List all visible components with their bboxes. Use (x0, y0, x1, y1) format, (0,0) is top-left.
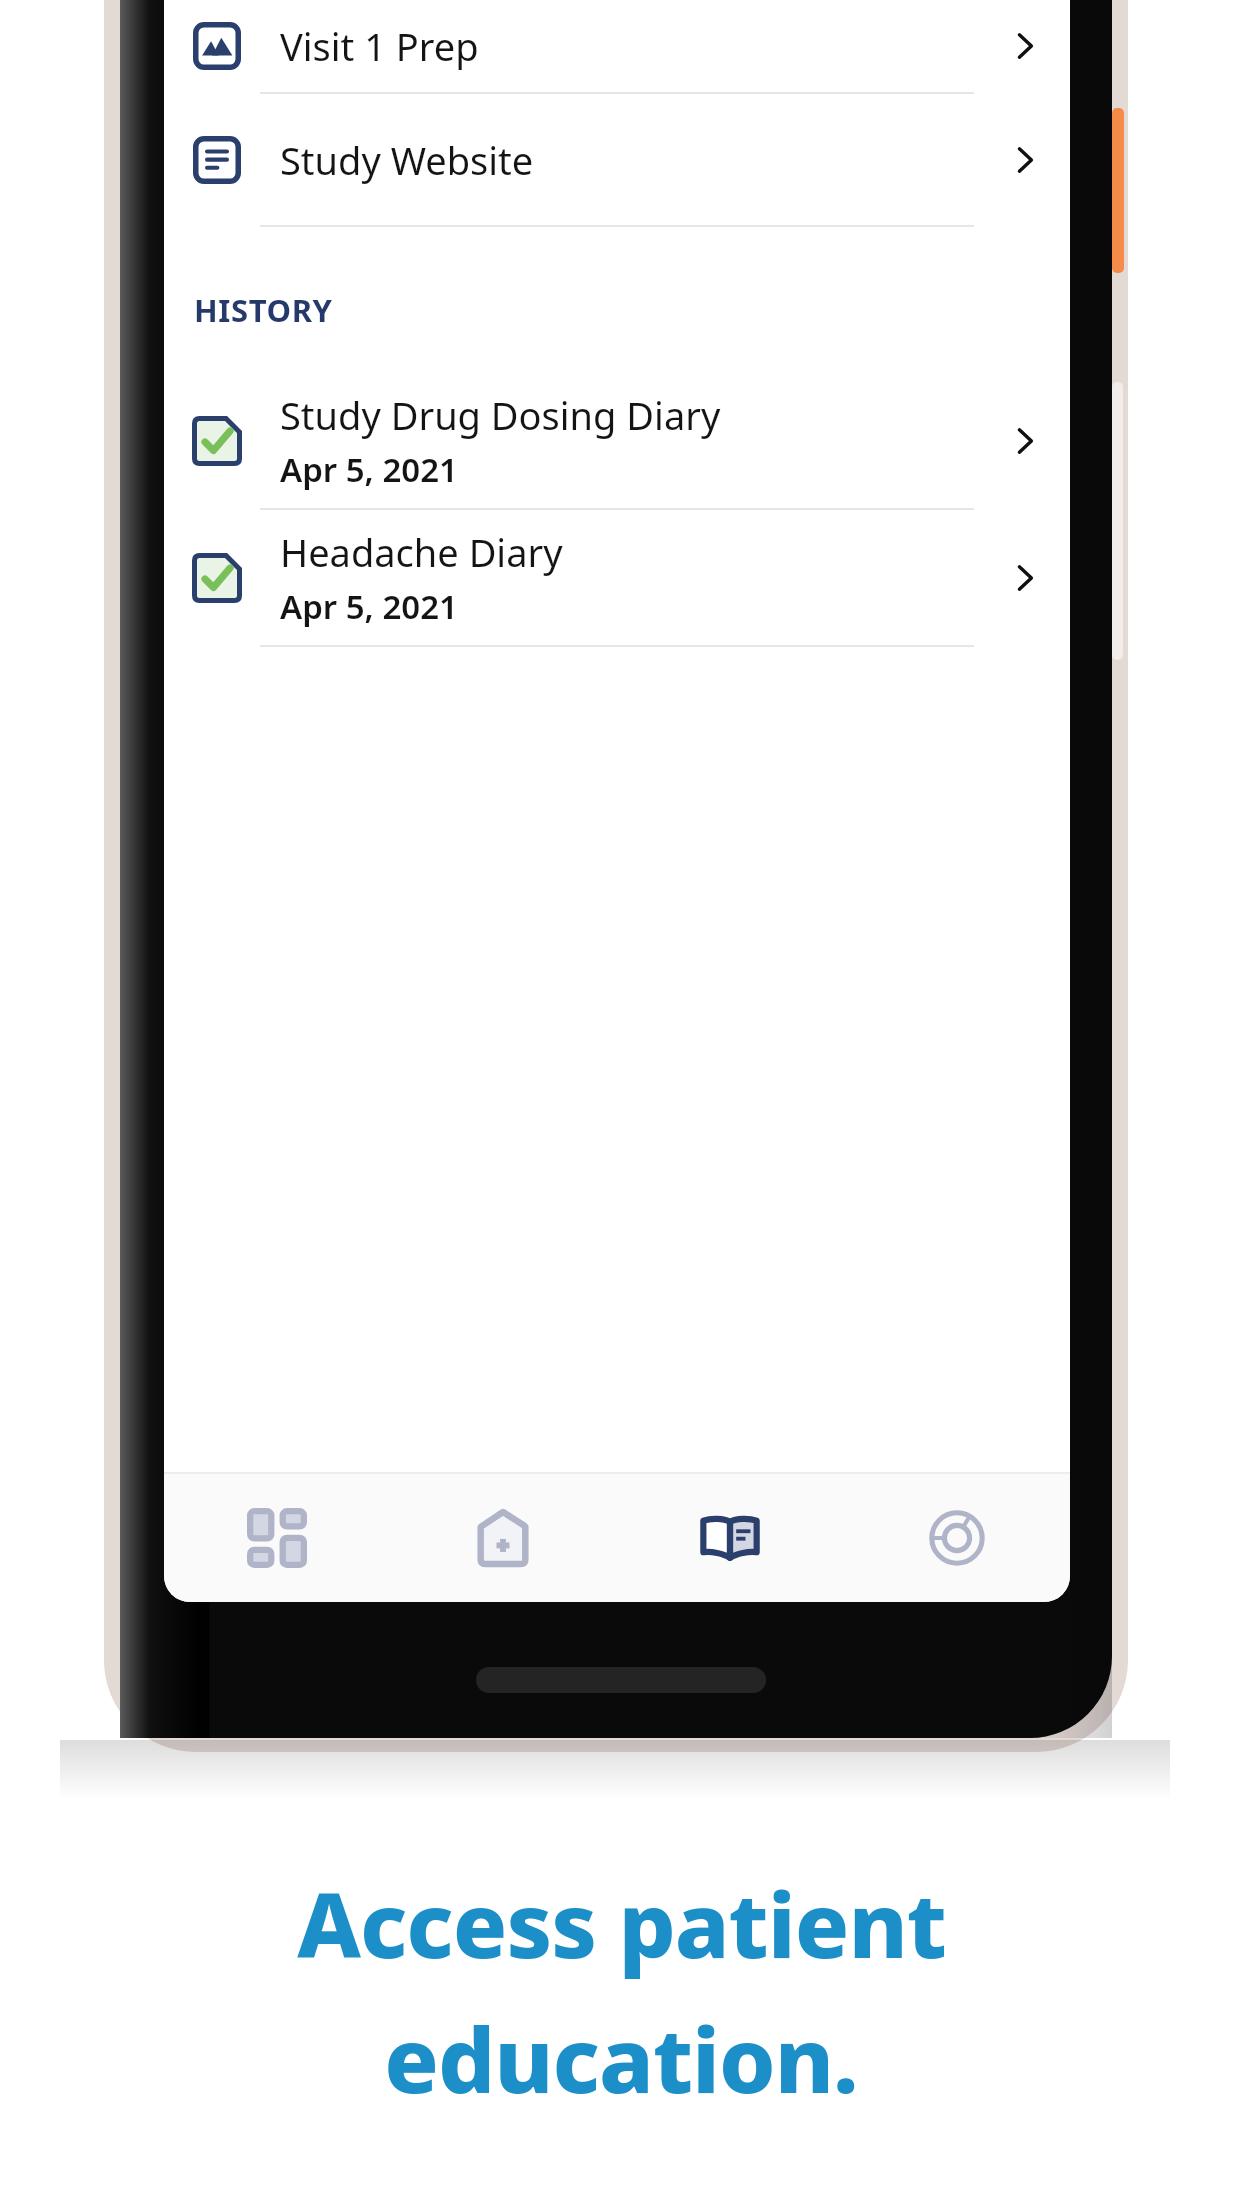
staticText: HISTORY (194, 289, 333, 331)
button[interactable]: Education (616, 1474, 843, 1602)
staticText: Access patient (297, 1862, 946, 1985)
button[interactable]: Headache Diary (164, 510, 1070, 645)
staticText: Study Drug Dosing Diary (280, 389, 721, 441)
button[interactable]: Visit 1 Prep (164, 0, 1070, 92)
button[interactable]: Progress (843, 1474, 1070, 1602)
button[interactable]: Study Drug Dosing Diary (164, 373, 1070, 508)
button[interactable]: Dashboard (164, 1474, 390, 1602)
button[interactable]: Health (390, 1474, 616, 1602)
staticText: education. (384, 1997, 858, 2120)
staticText: Headache Diary (280, 526, 563, 578)
staticText: Study Website (280, 134, 534, 186)
staticText: Visit 1 Prep (280, 20, 479, 72)
button[interactable]: Study Website (164, 94, 1070, 225)
staticText: Apr 5, 2021 (280, 447, 458, 492)
staticText: Apr 5, 2021 (280, 584, 458, 629)
